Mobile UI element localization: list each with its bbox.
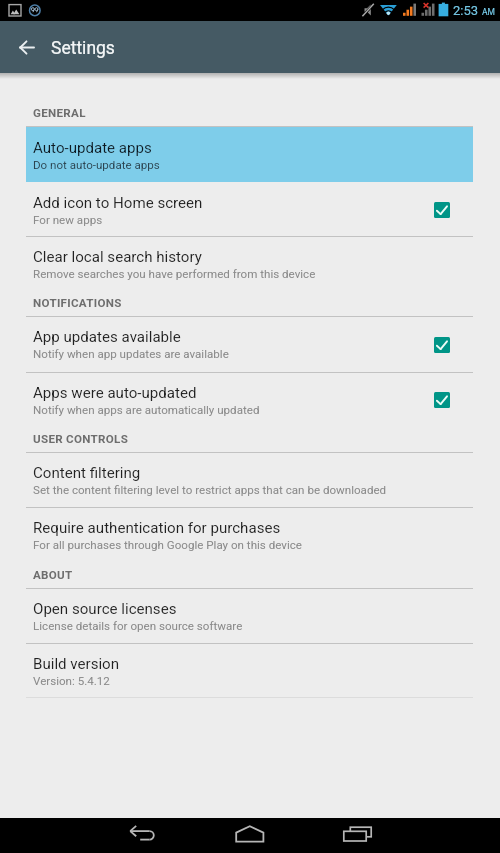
button[interactable]: App updates available — [0, 316, 500, 372]
button[interactable]: Auto-update apps — [26, 127, 473, 182]
button[interactable]: Require authentication for purchases — [0, 507, 500, 561]
staticText: Settings — [51, 38, 115, 59]
staticText: Clear local search history — [33, 248, 202, 266]
button[interactable]: Home — [225, 823, 275, 849]
staticText: Apps were auto-updated — [33, 384, 197, 402]
staticText: 2:53 — [453, 3, 479, 18]
staticText: For all purchases through Google Play on… — [33, 538, 302, 552]
staticText: Build version — [33, 655, 120, 673]
staticText: For new apps — [33, 213, 103, 227]
button[interactable]: Content filtering — [0, 452, 500, 507]
staticText: Open source licenses — [33, 600, 177, 618]
staticText: Do not auto-update apps — [33, 158, 160, 172]
staticText: Auto-update apps — [33, 139, 152, 157]
staticText: ABOUT — [33, 568, 73, 582]
staticText: Notify when apps are automatically updat… — [33, 403, 260, 417]
staticText: Notify when app updates are available — [33, 347, 229, 361]
button[interactable]: Apps were auto-updated — [0, 372, 500, 426]
staticText: Set the content filtering level to restr… — [33, 483, 387, 497]
staticText: Version: 5.4.12 — [33, 674, 110, 688]
staticText: Require authentication for purchases — [33, 519, 281, 537]
staticText: Remove searches you have performed from … — [33, 267, 316, 281]
staticText: Content filtering — [33, 464, 141, 482]
button[interactable]: Clear local search history — [0, 236, 500, 291]
button[interactable]: Back — [118, 823, 168, 849]
staticText: AM — [482, 7, 495, 17]
staticText: License details for open source software — [33, 619, 243, 633]
button[interactable]: Add icon to Home screen — [0, 182, 500, 236]
staticText: Add icon to Home screen — [33, 194, 203, 212]
button[interactable]: Open source licenses — [0, 588, 500, 643]
staticText: GENERAL — [33, 106, 86, 120]
button[interactable]: Back — [0, 21, 52, 73]
button[interactable]: Build version — [0, 643, 500, 696]
staticText: USER CONTROLS — [33, 432, 129, 446]
button[interactable]: Recent apps — [333, 823, 383, 849]
staticText: NOTIFICATIONS — [33, 296, 122, 310]
staticText: App updates available — [33, 328, 181, 346]
